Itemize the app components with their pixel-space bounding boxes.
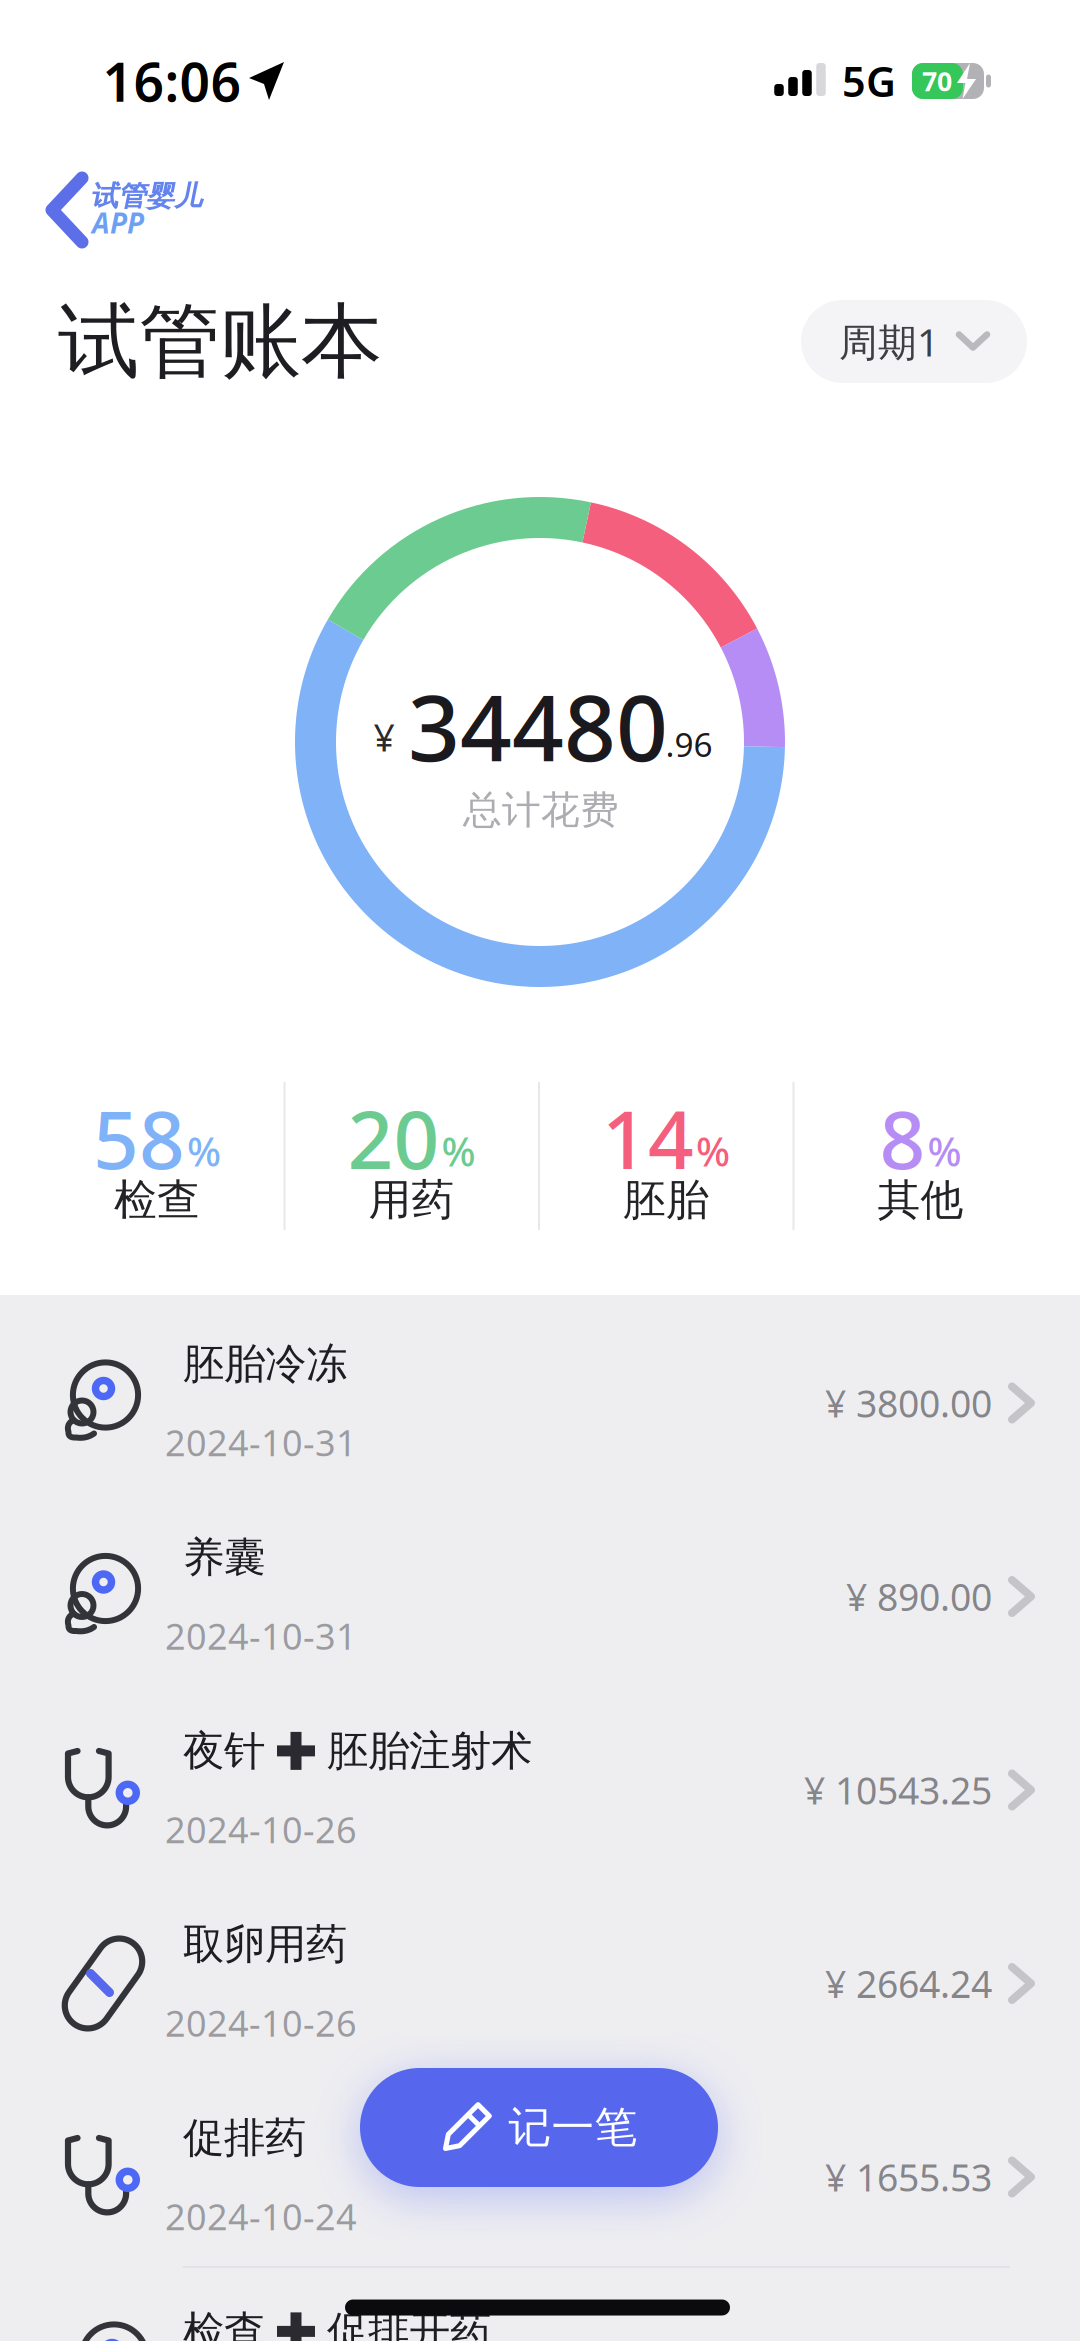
staticText: 14 — [602, 1085, 694, 1191]
staticText: 2024-10-31 — [165, 1612, 357, 1660]
staticText: 34480 — [408, 666, 668, 786]
staticText: 周期1 — [839, 316, 939, 367]
staticText: 8 — [879, 1085, 925, 1191]
staticText: 检查 — [114, 1174, 200, 1226]
staticText: .96 — [665, 722, 712, 766]
staticText: 58 — [93, 1085, 185, 1191]
button[interactable]: 夜针 — [0, 1693, 1080, 1886]
staticText: % — [927, 1124, 961, 1177]
button[interactable]: 胚胎冷冻 — [0, 1306, 1080, 1499]
staticText: % — [441, 1124, 475, 1177]
staticText: 2024-10-24 — [165, 2192, 357, 2240]
staticText: 记一笔 — [508, 2101, 637, 2154]
button[interactable]: 记一笔 — [360, 2068, 718, 2187]
staticText: 用药 — [368, 1174, 454, 1226]
staticText: ¥ — [373, 712, 394, 762]
staticText: ¥ 2664.24 — [825, 1959, 992, 2008]
staticText: 促排开药 — [327, 2306, 491, 2341]
button[interactable]: 周期1 — [801, 300, 1027, 383]
button[interactable]: 养囊 — [0, 1500, 1080, 1693]
button[interactable]: 返回 — [38, 168, 258, 258]
staticText: 胚胎注射术 — [327, 1725, 532, 1776]
staticText: 5G — [842, 54, 896, 108]
staticText: 其他 — [877, 1174, 963, 1226]
staticText: 20 — [347, 1085, 439, 1191]
staticText: 总计花费 — [463, 786, 619, 834]
staticText: 胚胎冷冻 — [183, 1338, 347, 1389]
staticText: 夜针 — [183, 1725, 265, 1776]
staticText: 2024-10-31 — [165, 1418, 357, 1466]
staticText: ¥ 890.00 — [846, 1572, 992, 1621]
staticText: ¥ 3800.00 — [825, 1378, 992, 1428]
staticText: 2024-10-26 — [165, 1999, 357, 2047]
staticText: 检查 — [183, 2306, 265, 2341]
staticText: 试管婴儿 — [90, 179, 202, 213]
staticText: 16:06 — [102, 46, 241, 116]
button[interactable]: 取卵用药 — [0, 1887, 1080, 2080]
staticText: 促排药 — [183, 2112, 306, 2163]
staticText: APP — [92, 204, 144, 241]
staticText: % — [696, 1124, 730, 1177]
staticText: 70 — [922, 63, 952, 99]
staticText: 取卵用药 — [183, 1919, 347, 1970]
staticText: ¥ 10543.25 — [804, 1765, 992, 1815]
staticText: 胚胎 — [623, 1174, 709, 1226]
staticText: 养囊 — [183, 1532, 265, 1583]
button[interactable]: 检查 — [0, 2274, 1080, 2341]
staticText: ¥ 1655.53 — [825, 2152, 992, 2202]
staticText: % — [187, 1124, 221, 1177]
staticText: 试管账本 — [58, 292, 382, 392]
button[interactable]: 促排药 — [0, 2080, 1080, 2273]
staticText: 2024-10-26 — [165, 1805, 357, 1853]
